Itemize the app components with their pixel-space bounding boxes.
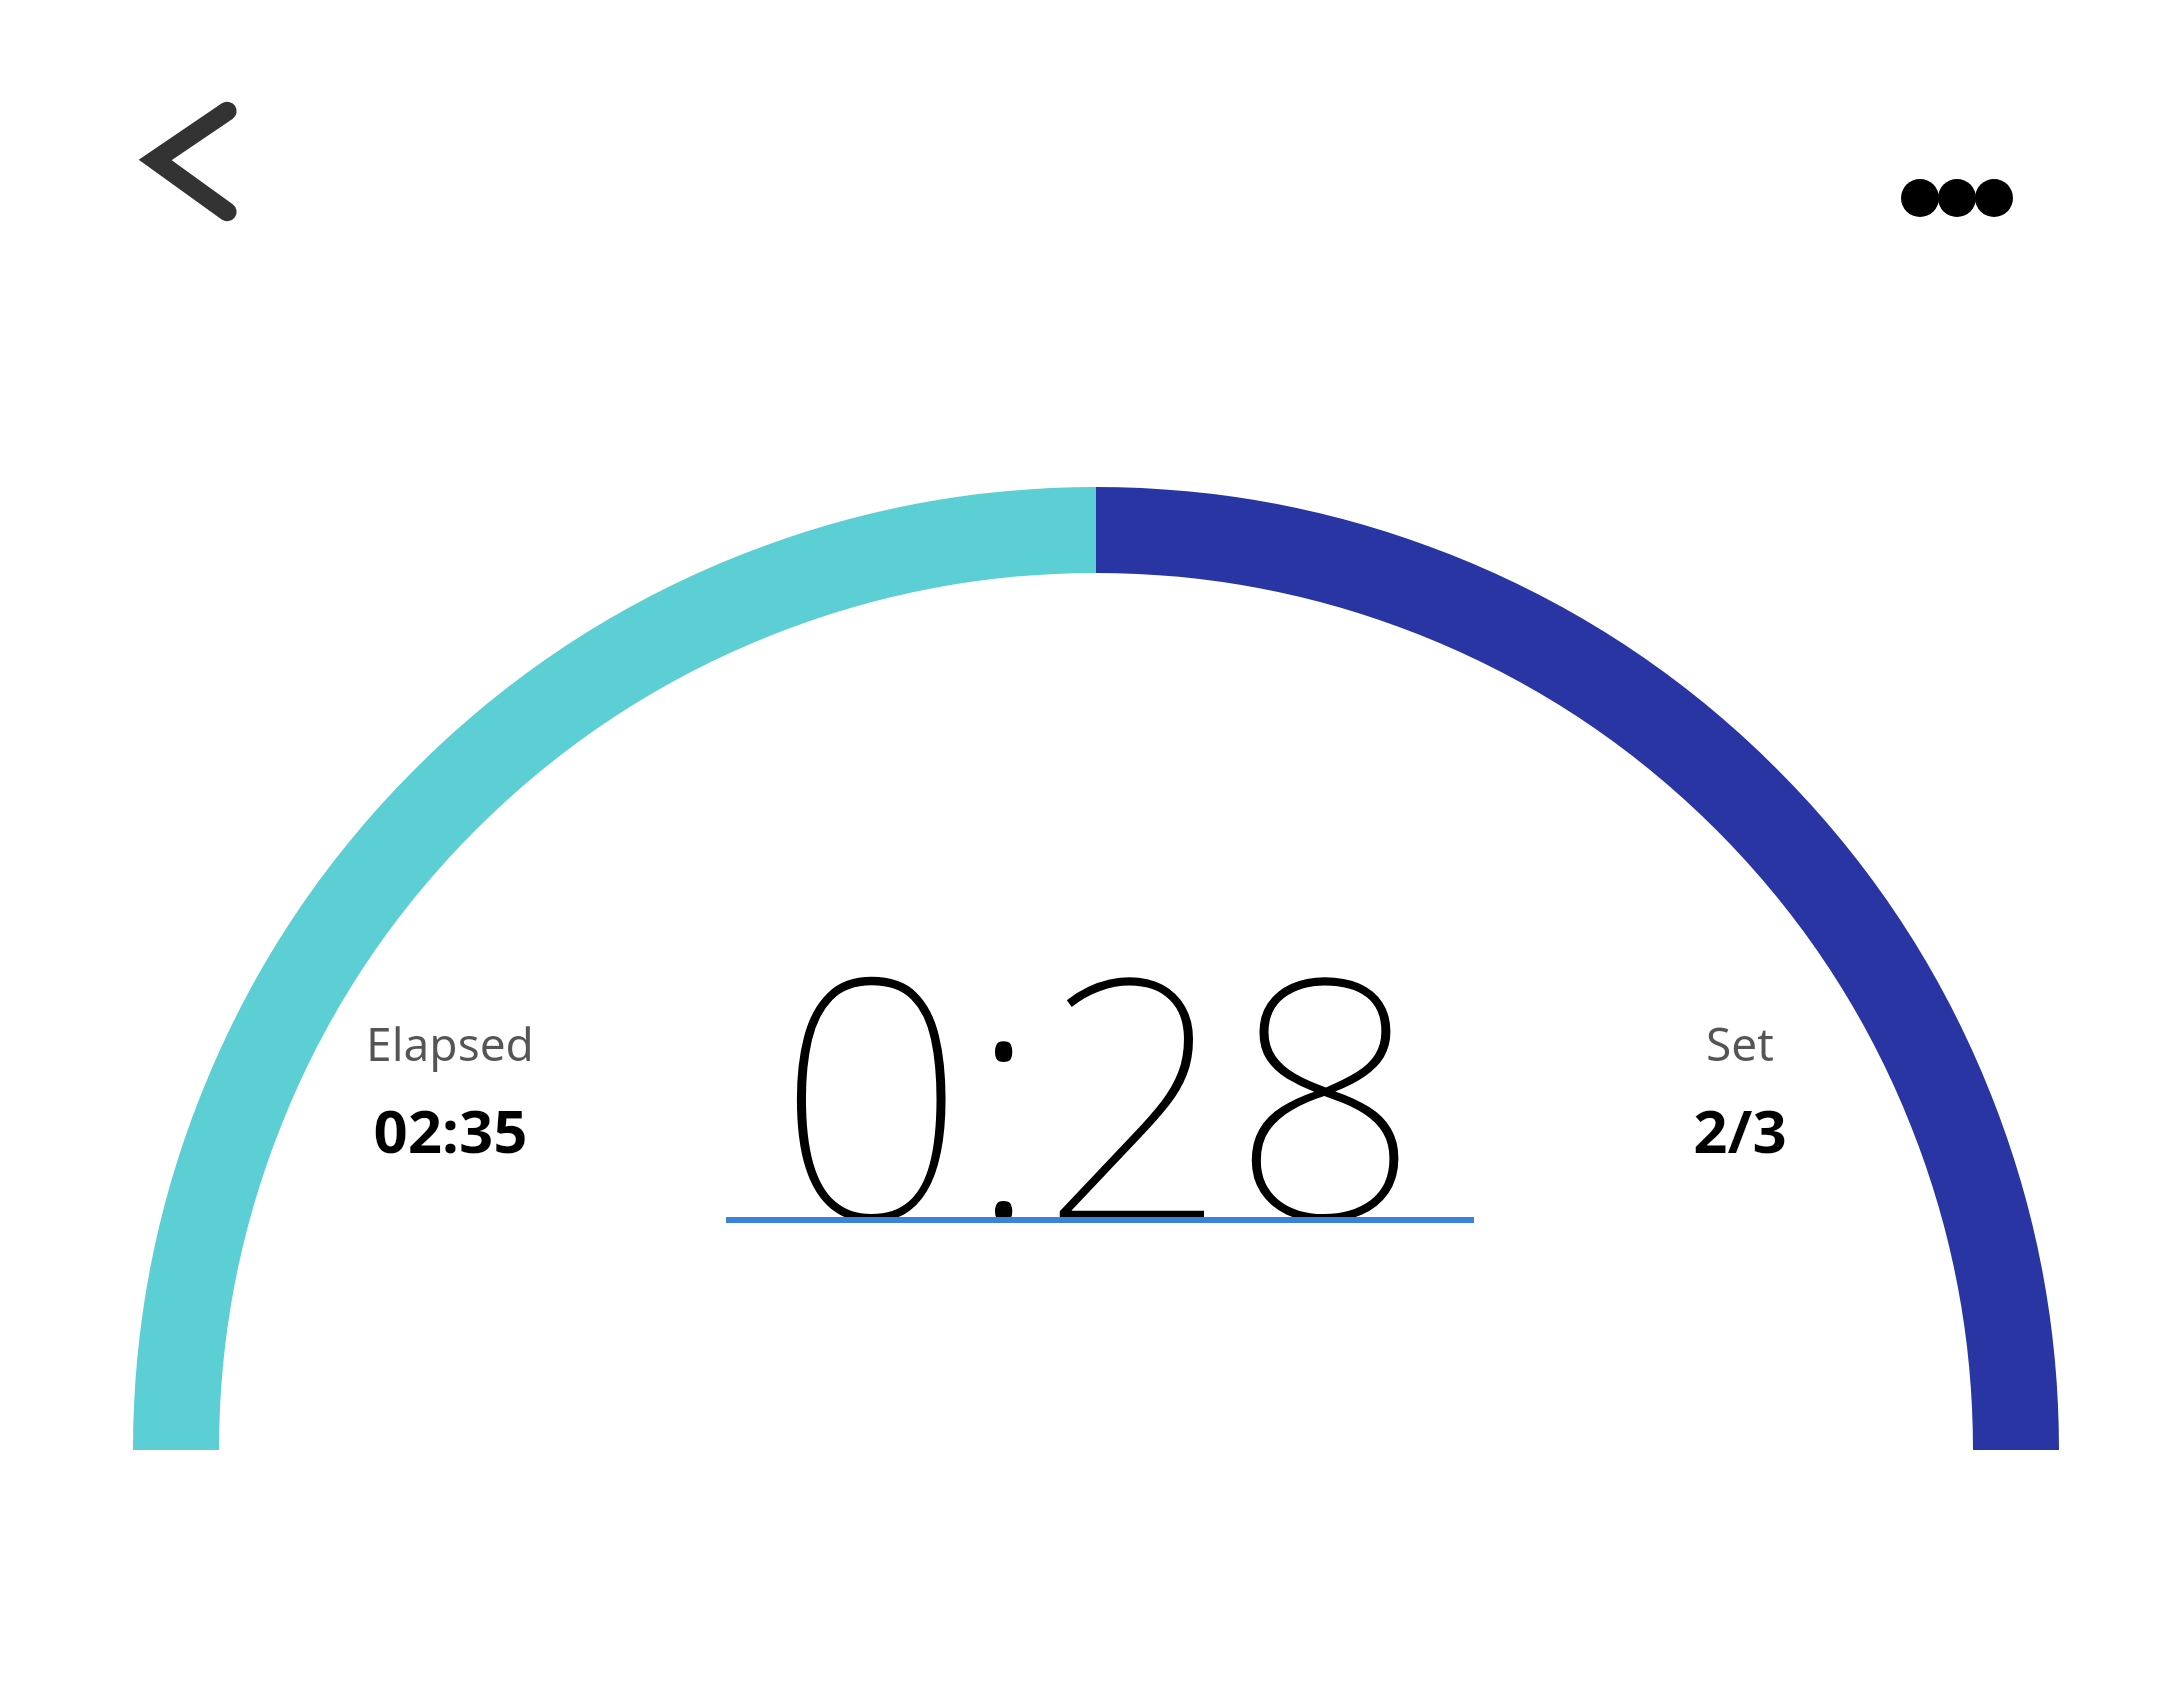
button[interactable]: 0:28: [648, 862, 1548, 1302]
staticText: 02:35: [373, 1089, 528, 1171]
button[interactable]: More options: [1876, 146, 2044, 250]
button[interactable]: Set: [1440, 1012, 2040, 1171]
staticText: Set: [1706, 1012, 1774, 1075]
staticText: Elapsed: [366, 1012, 534, 1075]
button[interactable]: Back: [112, 86, 272, 234]
staticText: 0:28: [776, 862, 1421, 1302]
staticText: 2/3: [1693, 1089, 1787, 1171]
button[interactable]: Elapsed: [150, 1012, 750, 1171]
